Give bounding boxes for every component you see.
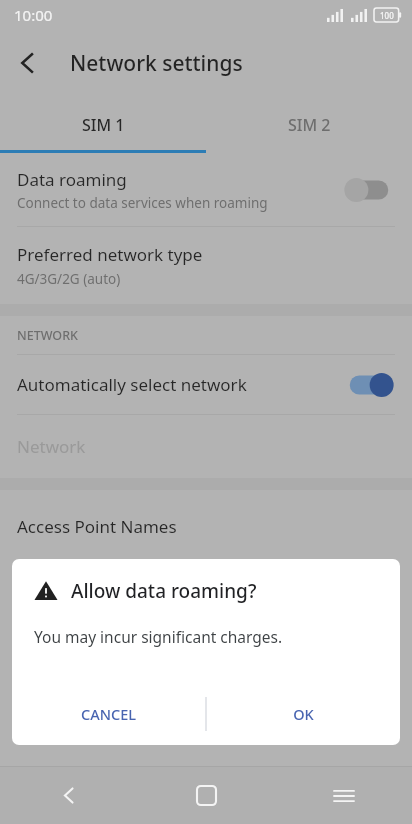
- staticText: SIM 1: [82, 114, 125, 136]
- staticText: Access Point Names: [17, 515, 177, 538]
- button[interactable]: Preferred network type: [0, 227, 412, 304]
- staticText: 100: [380, 10, 394, 21]
- button[interactable]: Access Point Names: [0, 490, 412, 550]
- button[interactable]: Data roaming: [0, 153, 412, 226]
- button[interactable]: Switch off: [343, 175, 395, 205]
- staticText: SIM 2: [288, 114, 331, 136]
- staticText: You may incur significant charges.: [34, 626, 283, 647]
- button[interactable]: Automatically select network: [0, 355, 412, 414]
- button[interactable]: Back: [0, 767, 138, 824]
- staticText: 4G/3G/2G (auto): [17, 270, 121, 288]
- staticText: Automatically select network: [17, 373, 343, 396]
- button[interactable]: Back: [0, 35, 56, 91]
- button[interactable]: Switch on: [343, 370, 395, 400]
- staticText: CANCEL: [81, 704, 136, 724]
- staticText: NETWORK: [17, 327, 78, 344]
- button[interactable]: SIM 2: [206, 96, 412, 153]
- staticText: Connect to data services when roaming: [17, 194, 268, 212]
- button[interactable]: SIM 1: [0, 96, 206, 153]
- button[interactable]: Recent apps: [275, 767, 412, 824]
- button[interactable]: OK: [207, 683, 400, 745]
- staticText: Data roaming: [17, 168, 127, 191]
- button[interactable]: Home: [138, 767, 275, 824]
- button[interactable]: CANCEL: [12, 683, 205, 745]
- staticText: Preferred network type: [17, 243, 203, 266]
- staticText: OK: [293, 704, 314, 724]
- staticText: Allow data roaming?: [71, 578, 257, 604]
- staticText: Network settings: [70, 49, 243, 78]
- staticText: Network: [17, 435, 86, 458]
- staticText: 10:00: [14, 5, 53, 25]
